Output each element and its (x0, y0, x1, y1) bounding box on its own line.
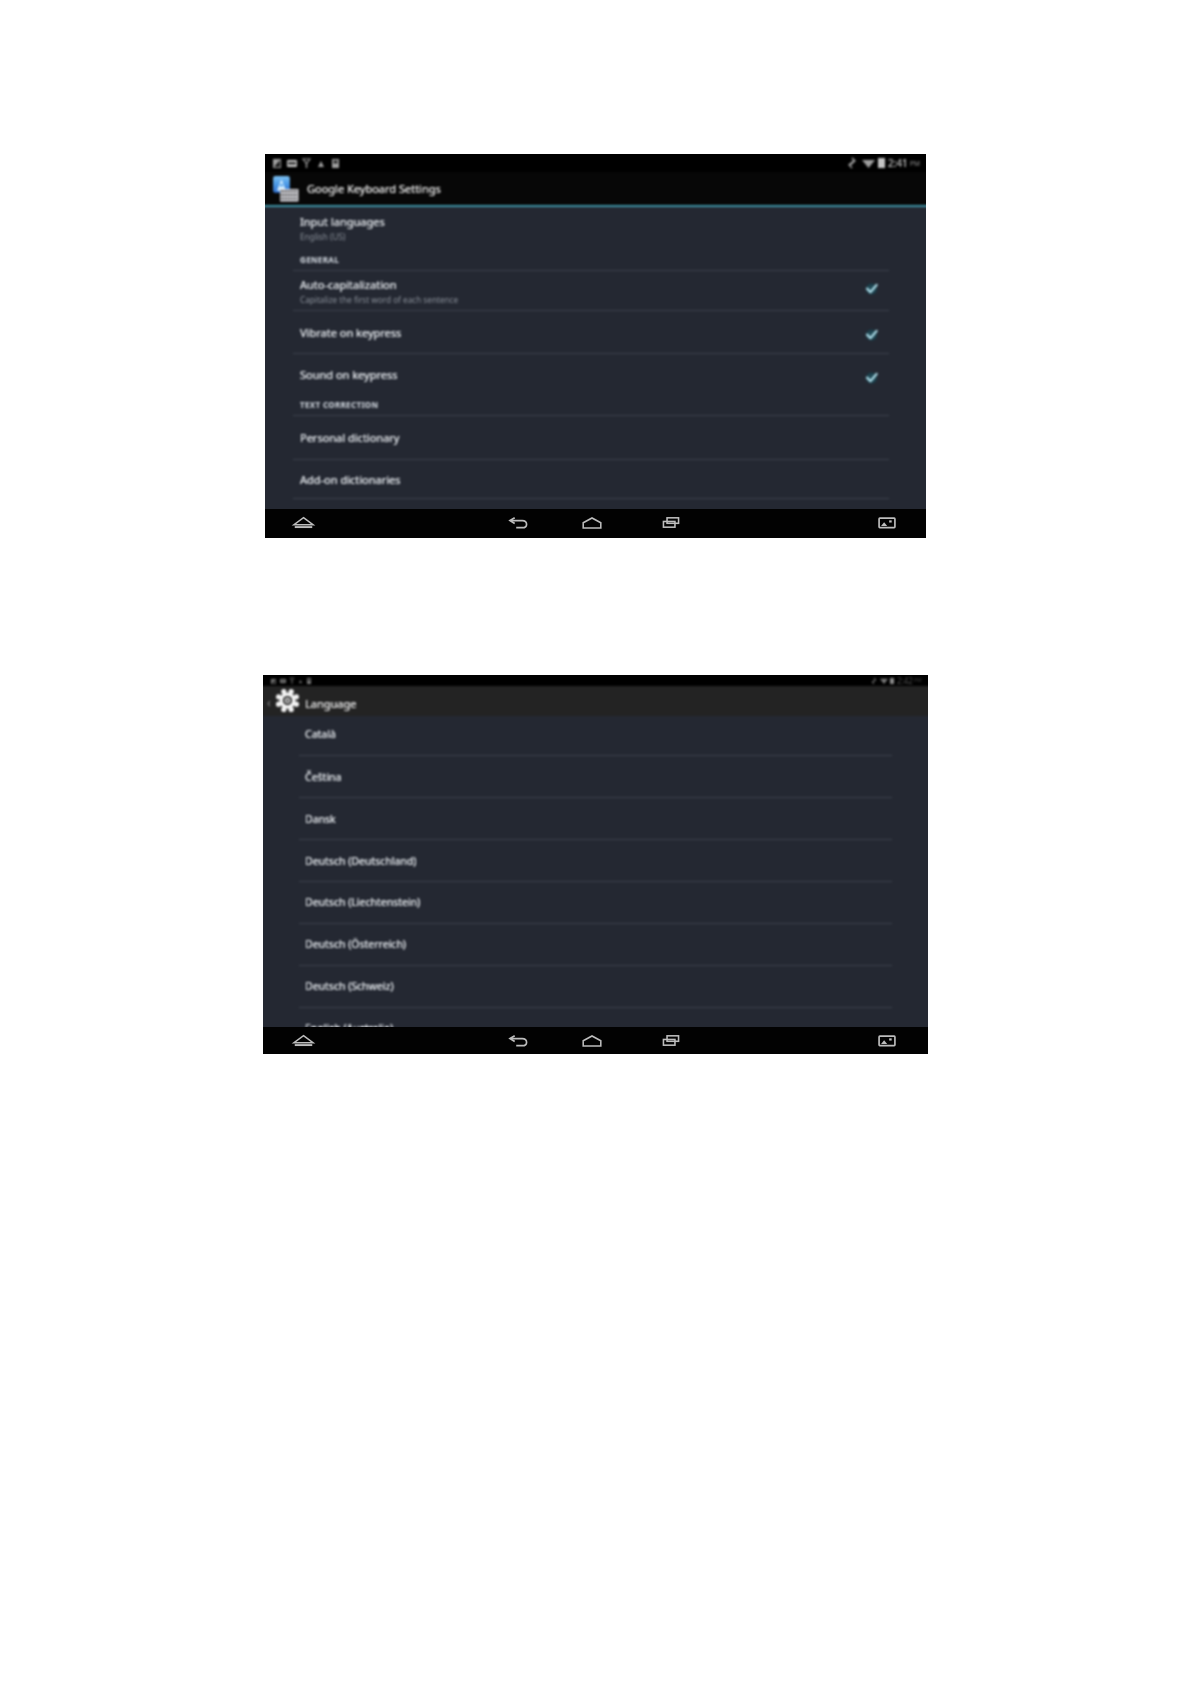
button[interactable]: Input languages (265, 212, 926, 242)
staticText: Català (305, 727, 336, 741)
button[interactable]: Čeština (263, 768, 928, 786)
staticText: Deutsch (Liechtenstein) (305, 895, 421, 909)
staticText: English (US) (300, 231, 346, 242)
button[interactable]: Deutsch (Schweiz) (263, 977, 928, 995)
button[interactable]: Deutsch (Österreich) (263, 935, 928, 953)
staticText: Deutsch (Deutschland) (305, 854, 417, 868)
button[interactable]: Personal dictionary (265, 428, 926, 448)
button[interactable]: Screenshot (868, 1027, 906, 1054)
staticText: English (Australia) (305, 1021, 394, 1027)
button[interactable]: Back (499, 1027, 537, 1054)
staticText: Sound on keypress (300, 367, 398, 382)
staticText: Language (305, 696, 357, 711)
staticText: 2:42 (897, 675, 913, 686)
button[interactable]: Hide keyboard (284, 509, 322, 536)
staticText: Dansk (305, 812, 336, 826)
staticText: 2:41 (888, 156, 908, 170)
staticText: Capitalize the first word of each senten… (300, 294, 459, 305)
button[interactable]: Back (499, 509, 537, 536)
button[interactable]: ‹ (263, 686, 928, 716)
staticText: Google Keyboard Settings (307, 181, 441, 196)
button[interactable]: Home (573, 509, 611, 536)
staticText: GENERAL (300, 254, 339, 265)
staticText: Deutsch (Schweiz) (305, 979, 394, 993)
staticText: Auto-capitalization (300, 277, 397, 292)
staticText: PM (910, 159, 920, 168)
staticText: Input languages (300, 214, 385, 229)
staticText: Personal dictionary (300, 430, 400, 445)
staticText: Add-on dictionaries (300, 472, 401, 487)
button[interactable]: Add-on dictionaries (265, 470, 926, 490)
button[interactable]: Hide keyboard (284, 1027, 322, 1054)
staticText: TEXT CORRECTION (300, 399, 379, 410)
button[interactable]: Auto-capitalization (265, 275, 926, 305)
button[interactable]: Recent apps (652, 509, 690, 536)
button[interactable]: Deutsch (Liechtenstein) (263, 893, 928, 911)
button[interactable]: Home (573, 1027, 611, 1054)
button[interactable]: Deutsch (Deutschland) (263, 852, 928, 870)
staticText: Deutsch (Österreich) (305, 937, 407, 951)
button[interactable]: English (Australia) (263, 1019, 928, 1027)
button[interactable]: Recent apps (652, 1027, 690, 1054)
button[interactable]: Vibrate on keypress (265, 323, 926, 343)
button[interactable]: Screenshot (868, 509, 906, 536)
button[interactable]: Google Keyboard Settings (265, 172, 926, 205)
button[interactable]: Toggle setting (862, 369, 881, 387)
staticText: Vibrate on keypress (300, 325, 402, 340)
staticText: Čeština (305, 770, 342, 784)
staticText: ‹ (267, 694, 271, 710)
button[interactable]: Dansk (263, 810, 928, 828)
button[interactable]: Toggle setting (862, 280, 881, 298)
button[interactable]: Sound on keypress (265, 365, 926, 385)
button[interactable]: Català (263, 725, 928, 743)
button[interactable]: Toggle setting (862, 326, 881, 344)
staticText: PM (914, 677, 922, 684)
